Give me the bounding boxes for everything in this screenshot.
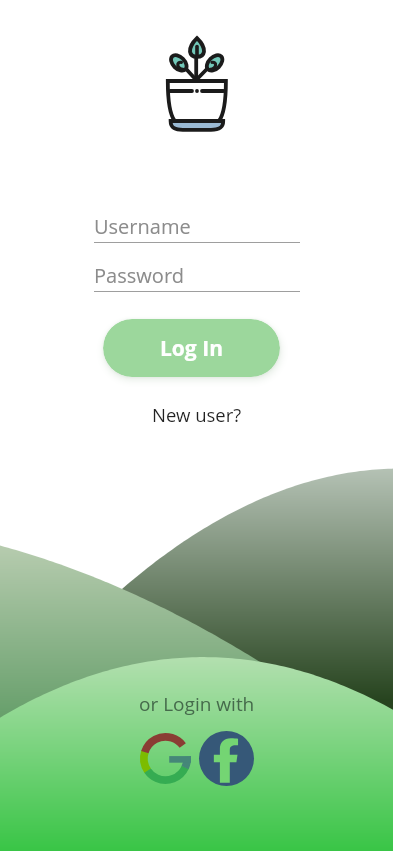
staticText: or Login with [139, 691, 255, 717]
button[interactable]: Log In [103, 319, 280, 377]
button[interactable]: Username [94, 212, 300, 243]
staticText: Username [94, 213, 191, 240]
staticText: Log In [160, 334, 223, 363]
button[interactable]: Password [94, 261, 300, 292]
staticText: New user? [152, 402, 242, 427]
button[interactable]: Sign in with Facebook [199, 731, 254, 786]
button[interactable]: Sign in with Google [140, 733, 191, 784]
staticText: Password [94, 262, 184, 289]
button[interactable]: New user? [145, 401, 248, 428]
